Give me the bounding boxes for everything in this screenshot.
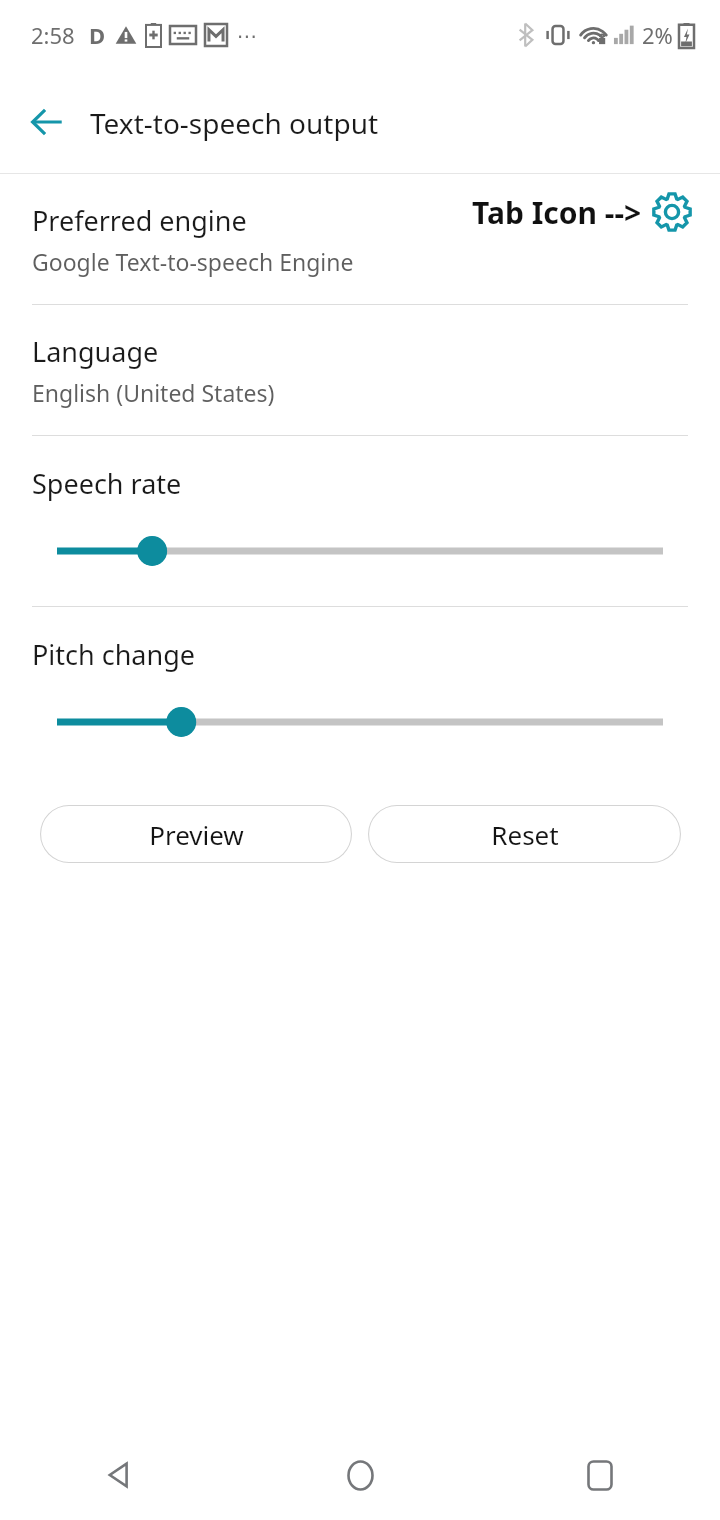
staticText: Reset bbox=[491, 817, 559, 852]
staticText: English (United States) bbox=[32, 377, 275, 408]
button[interactable]: Preview bbox=[40, 805, 352, 863]
button[interactable]: Engine settings bbox=[650, 190, 694, 234]
staticText: 2% bbox=[642, 20, 673, 50]
button[interactable]: Back bbox=[19, 94, 75, 150]
staticText: Language bbox=[32, 333, 159, 370]
button[interactable]: Recent apps bbox=[480, 1430, 720, 1520]
staticText: Preferred engine bbox=[32, 202, 247, 239]
staticText: D bbox=[89, 20, 106, 50]
staticText: Text-to-speech output bbox=[90, 104, 379, 142]
button[interactable]: Reset bbox=[368, 805, 681, 863]
staticText: ⋯ bbox=[237, 24, 257, 47]
button[interactable]: Back bbox=[0, 1430, 240, 1520]
staticText: 2:58 bbox=[31, 20, 75, 50]
staticText: Tab Icon --> bbox=[472, 192, 642, 233]
button[interactable]: Speech rate bbox=[0, 436, 720, 606]
button[interactable]: Home bbox=[240, 1430, 480, 1520]
staticText: Preview bbox=[149, 817, 244, 852]
button[interactable]: Language bbox=[0, 305, 720, 435]
button[interactable]: Pitch change bbox=[0, 607, 720, 777]
staticText: Speech rate bbox=[32, 465, 182, 502]
staticText: Pitch change bbox=[32, 636, 196, 673]
staticText: Google Text-to-speech Engine bbox=[32, 246, 354, 277]
button[interactable]: Preferred engine bbox=[0, 174, 720, 304]
